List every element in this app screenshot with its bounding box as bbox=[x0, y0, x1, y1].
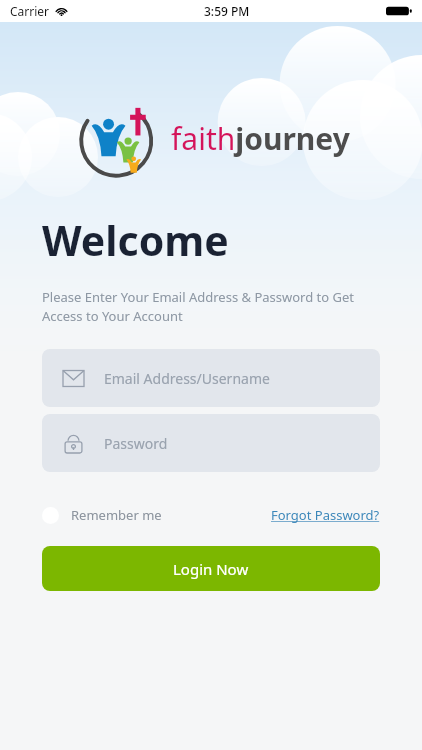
staticText: 3:59 PM bbox=[204, 3, 250, 19]
button[interactable]: Forgot Password? bbox=[271, 502, 380, 528]
button[interactable]: Login Now bbox=[42, 546, 380, 591]
staticText: faithjourney bbox=[171, 118, 350, 159]
staticText: Carrier bbox=[10, 3, 50, 19]
staticText: Welcome bbox=[42, 212, 229, 268]
staticText: Password bbox=[104, 434, 168, 453]
staticText: Remember me bbox=[71, 506, 162, 524]
staticText: Email Address/Username bbox=[104, 369, 270, 388]
staticText: Login Now bbox=[173, 559, 249, 579]
staticText: Forgot Password? bbox=[271, 506, 380, 524]
button[interactable]: Email Address/Username bbox=[42, 349, 380, 407]
button[interactable]: Password bbox=[42, 414, 380, 472]
staticText: Please Enter Your Email Address & Passwo… bbox=[42, 288, 380, 325]
button[interactable]: Remember me bbox=[42, 502, 162, 528]
